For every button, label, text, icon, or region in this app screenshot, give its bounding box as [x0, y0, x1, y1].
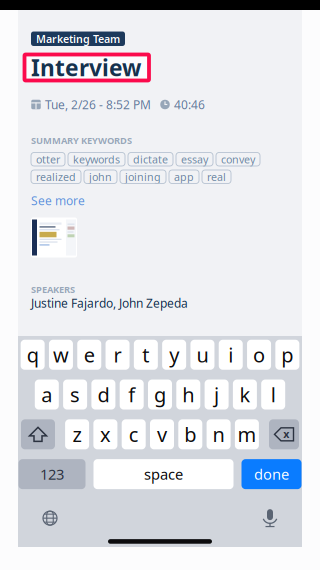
staticText: n [213, 421, 225, 448]
staticText: q [27, 341, 39, 368]
button[interactable]: dictate [128, 152, 173, 166]
button[interactable]: john [84, 170, 117, 183]
button[interactable]: o [247, 340, 271, 370]
staticText: g [154, 381, 166, 408]
button[interactable]: v [150, 419, 174, 449]
staticText: 123 [40, 464, 64, 484]
staticText: c [129, 421, 139, 448]
staticText: real [207, 170, 226, 184]
staticText: convey [221, 152, 255, 166]
staticText: t [142, 341, 149, 368]
staticText: 40:46 [174, 96, 205, 112]
button[interactable]: Dictate [257, 505, 283, 531]
staticText: Interview [31, 52, 141, 82]
staticText: keywords [73, 152, 120, 166]
staticText: john [89, 170, 112, 184]
button[interactable]: n [207, 419, 231, 449]
button[interactable]: h [176, 380, 200, 410]
staticText: Marketing Team [36, 32, 120, 46]
button[interactable]: realized [31, 170, 81, 183]
staticText: z [73, 421, 82, 448]
staticText: i [228, 341, 233, 368]
button[interactable]: real [202, 170, 231, 183]
button[interactable]: essay [176, 152, 213, 166]
button[interactable]: Attachment preview [31, 217, 77, 257]
button[interactable]: z [65, 419, 89, 449]
staticText: r [114, 341, 122, 368]
staticText: h [182, 381, 194, 408]
button[interactable]: Interview [24, 54, 149, 80]
button[interactable]: d [91, 380, 115, 410]
button[interactable]: q [21, 340, 45, 370]
button[interactable]: r [106, 340, 130, 370]
staticText: y [169, 341, 179, 368]
staticText: k [239, 381, 250, 408]
button[interactable]: e [77, 340, 101, 370]
button[interactable]: u [190, 340, 214, 370]
button[interactable]: x [93, 419, 117, 449]
staticText: space [144, 464, 183, 484]
button[interactable]: Delete [269, 419, 299, 449]
staticText: Justine Fajardo, John Zepeda [31, 295, 188, 311]
staticText: b [184, 421, 196, 448]
staticText: p [281, 341, 293, 368]
staticText: v [157, 421, 167, 448]
staticText: f [128, 381, 135, 408]
button[interactable]: b [178, 419, 202, 449]
button[interactable]: m [235, 419, 259, 449]
staticText: joining [125, 170, 161, 184]
staticText: a [41, 381, 52, 408]
button[interactable]: k [233, 380, 257, 410]
button[interactable]: g [148, 380, 172, 410]
staticText: u [196, 341, 208, 368]
button[interactable]: space [93, 459, 233, 489]
staticText: l [271, 381, 276, 408]
button[interactable]: c [122, 419, 146, 449]
staticText: d [97, 381, 109, 408]
button[interactable]: f [120, 380, 144, 410]
button[interactable]: keywords [68, 152, 125, 166]
staticText: x [283, 427, 289, 441]
staticText: essay [181, 152, 208, 166]
button[interactable]: y [162, 340, 186, 370]
button[interactable]: p [275, 340, 299, 370]
staticText: See more [31, 192, 85, 208]
button[interactable]: Shift [21, 419, 55, 449]
button[interactable]: 123 [18, 459, 85, 489]
button[interactable]: i [219, 340, 243, 370]
button[interactable]: app [169, 170, 199, 183]
button[interactable]: l [261, 380, 285, 410]
button[interactable]: joining [120, 170, 166, 183]
staticText: Tue, 2/26 - 8:52 PM [45, 96, 151, 112]
button[interactable]: a [35, 380, 59, 410]
button[interactable]: s [63, 380, 87, 410]
staticText: done [254, 464, 289, 484]
staticText: SUMMARY KEYWORDS [31, 134, 132, 147]
staticText: app [174, 170, 194, 184]
staticText: dictate [133, 152, 168, 166]
button[interactable]: otter [31, 152, 65, 166]
button[interactable]: convey [216, 152, 260, 166]
button[interactable]: Marketing Team [31, 31, 125, 46]
staticText: x [100, 421, 111, 448]
staticText: SPEAKERS [31, 283, 75, 296]
staticText: o [253, 341, 265, 368]
staticText: w [53, 341, 69, 368]
button[interactable]: w [49, 340, 73, 370]
staticText: s [70, 381, 80, 408]
staticText: j [214, 381, 219, 408]
staticText: e [84, 341, 95, 368]
button[interactable]: done [241, 459, 301, 489]
staticText: otter [36, 152, 60, 166]
button[interactable]: t [134, 340, 158, 370]
staticText: m [237, 421, 256, 448]
button[interactable]: j [205, 380, 229, 410]
staticText: realized [36, 170, 76, 184]
button[interactable]: See more [31, 195, 85, 205]
button[interactable]: Switch keyboard [37, 505, 63, 531]
